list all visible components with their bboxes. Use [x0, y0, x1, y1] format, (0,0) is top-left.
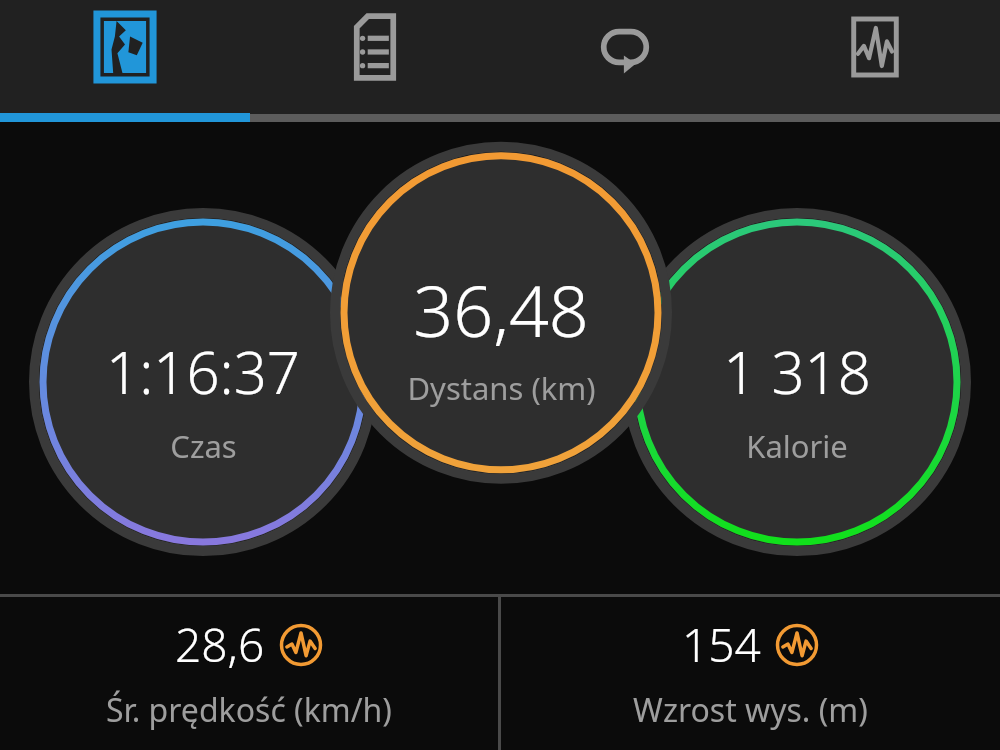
- staticText: 1:16:37: [106, 332, 300, 411]
- staticText: Wzrost wys. (m): [633, 688, 868, 732]
- staticText: 1 318: [723, 332, 871, 411]
- staticText: Czas: [170, 425, 237, 467]
- button[interactable]: Map: [0, 0, 250, 122]
- staticText: 28,6: [175, 613, 265, 676]
- staticText: 36,48: [413, 262, 589, 357]
- button[interactable]: Details: [250, 0, 500, 122]
- button[interactable]: 28,6: [0, 594, 498, 750]
- button[interactable]: 154: [501, 594, 1000, 750]
- staticText: Śr. prędkość (km/h): [106, 688, 392, 732]
- button[interactable]: Graphs: [750, 0, 1000, 122]
- staticText: Dystans (km): [407, 367, 596, 409]
- button[interactable]: Laps: [500, 0, 750, 122]
- staticText: Kalorie: [746, 425, 848, 467]
- staticText: 154: [682, 613, 761, 676]
